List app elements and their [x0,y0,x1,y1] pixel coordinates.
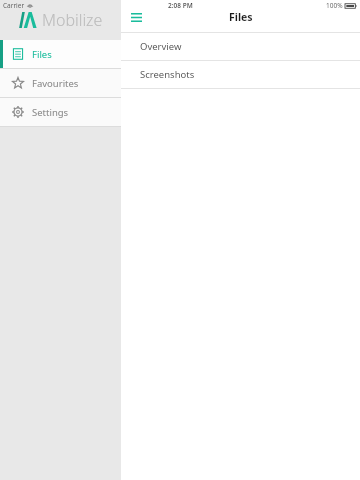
button[interactable]: Favourites [0,69,121,97]
button[interactable]: Overview [121,33,360,60]
button[interactable]: Screenshots [121,61,360,88]
staticText: Favourites [32,77,79,90]
button[interactable]: Settings [0,98,121,126]
staticText: Files [32,48,52,61]
staticText: Mobilize [42,9,103,31]
button[interactable]: Menu [127,8,145,26]
staticText: Screenshots [140,68,195,81]
staticText: 100% [326,1,343,10]
staticText: Carrier [3,1,25,10]
staticText: Files [229,10,253,24]
staticText: 2:08 PM [168,1,193,10]
staticText: Settings [32,106,69,119]
staticText: Overview [140,40,182,53]
button[interactable]: Files [0,40,121,68]
